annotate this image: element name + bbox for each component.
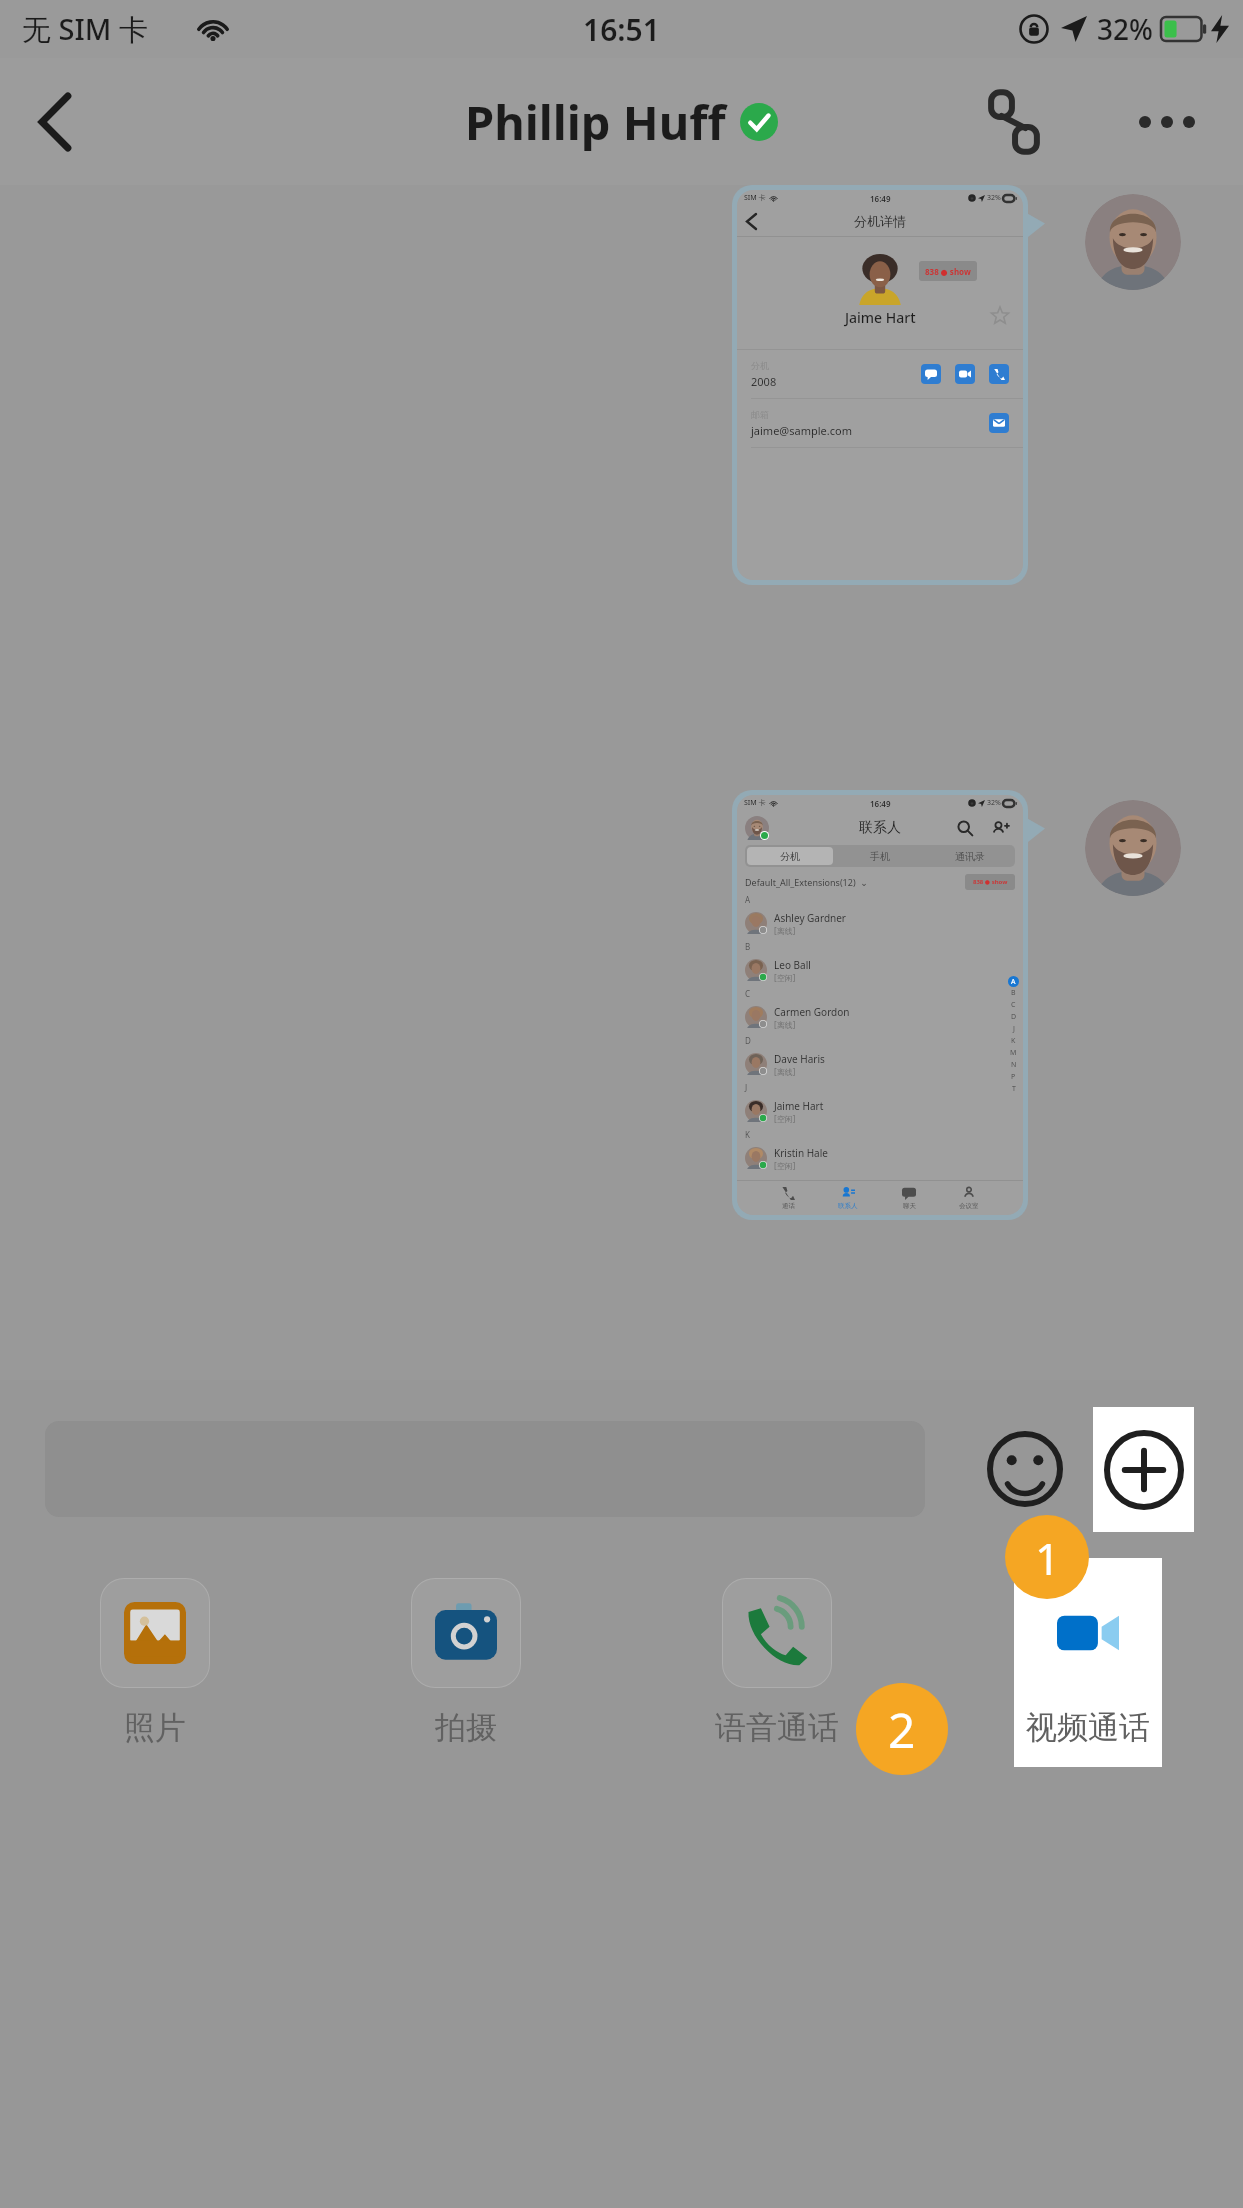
staticText: 分机 <box>751 360 769 371</box>
button[interactable]: 分机 <box>747 847 833 865</box>
button[interactable] <box>989 413 1009 433</box>
button[interactable]: SIM 卡 <box>737 190 1023 580</box>
button[interactable]: Emoji <box>975 1419 1075 1519</box>
staticText: Jaime Hart <box>845 308 916 327</box>
staticText: 视频通话 <box>1026 1708 1150 1747</box>
staticText: Jaime Hart <box>774 1099 824 1113</box>
button[interactable]: 会议室 <box>959 1186 979 1210</box>
staticText: 手机 <box>870 850 890 863</box>
button[interactable]: Call <box>968 76 1060 168</box>
staticText: [空闲] <box>774 1113 796 1124</box>
button[interactable]: 语音通话 <box>703 1578 851 1747</box>
button[interactable]: SIM 卡 <box>737 795 1023 1215</box>
staticText: 838 ● show <box>973 878 1008 886</box>
staticText: Dave Haris <box>774 1052 825 1066</box>
button[interactable]: Add attachment <box>1093 1407 1194 1532</box>
staticText: D <box>1011 1012 1017 1022</box>
staticText: K <box>1011 1036 1016 1046</box>
button[interactable]: Dave Haris <box>745 1049 1023 1079</box>
staticText: A <box>1011 977 1016 987</box>
staticText: 联系人 <box>838 1202 858 1210</box>
button[interactable]: 手机 <box>837 847 923 865</box>
button[interactable]: Ashley Gardner <box>745 908 1023 938</box>
staticText: 照片 <box>124 1708 186 1747</box>
staticText: jaime@sample.com <box>751 423 852 438</box>
staticText: [空闲] <box>774 972 796 983</box>
button[interactable]: Phillip Huff avatar <box>1085 194 1181 290</box>
staticText: 邮箱 <box>751 409 769 420</box>
staticText: A <box>745 894 751 905</box>
staticText: 1 <box>1035 1528 1060 1587</box>
staticText: Carmen Gordon <box>774 1005 850 1019</box>
button[interactable] <box>955 364 975 384</box>
staticText: J <box>1013 1024 1015 1034</box>
staticText: [离线] <box>774 925 796 936</box>
staticText: 16:49 <box>870 798 891 809</box>
staticText: 拍摄 <box>435 1708 497 1747</box>
button[interactable] <box>989 364 1009 384</box>
staticText: 分机详情 <box>854 213 906 229</box>
staticText: [离线] <box>774 1019 796 1030</box>
staticText: 联系人 <box>859 819 901 837</box>
staticText: 2 <box>888 1697 916 1762</box>
staticText: 32% <box>987 798 1001 808</box>
button[interactable]: More options <box>1121 76 1213 168</box>
staticText: [空闲] <box>774 1160 796 1171</box>
button[interactable]: Jaime Hart <box>745 1096 1023 1126</box>
staticText: 16:51 <box>583 9 660 50</box>
staticText: 2008 <box>751 374 777 389</box>
staticText: 分机 <box>780 850 800 863</box>
staticText: Ashley Gardner <box>774 911 846 925</box>
staticText: Leo Ball <box>774 958 811 972</box>
staticText: Phillip Huff <box>465 90 726 154</box>
staticText: C <box>745 988 751 999</box>
staticText: 会议室 <box>959 1202 979 1210</box>
button[interactable]: Phillip Huff avatar <box>1085 800 1181 896</box>
button[interactable]: Back <box>14 79 100 165</box>
staticText: 语音通话 <box>715 1708 839 1747</box>
staticText: Default_All_Extensions(12) ⌄ <box>745 876 868 888</box>
staticText: [离线] <box>774 1066 796 1077</box>
staticText: D <box>745 1035 751 1046</box>
staticText: B <box>745 941 751 952</box>
staticText: J <box>745 1082 748 1093</box>
staticText: 32% <box>987 193 1001 203</box>
staticText: N <box>1011 1060 1017 1070</box>
button[interactable]: Kristin Hale <box>745 1143 1023 1173</box>
staticText: 838 ● show <box>925 266 971 277</box>
staticText: P <box>1011 1072 1016 1082</box>
button[interactable]: 通话 <box>781 1186 795 1210</box>
staticText: SIM 卡 <box>744 193 766 203</box>
button[interactable]: 照片 <box>81 1578 229 1747</box>
button[interactable]: 通讯录 <box>927 847 1013 865</box>
staticText: 16:49 <box>870 193 891 204</box>
staticText: 通话 <box>782 1202 795 1210</box>
button[interactable]: 联系人 <box>838 1186 858 1210</box>
staticText: 聊天 <box>903 1202 916 1210</box>
staticText: 无 SIM 卡 <box>22 9 148 49</box>
staticText: B <box>1011 988 1016 998</box>
staticText: SIM 卡 <box>744 798 766 808</box>
staticText: M <box>1010 1048 1017 1058</box>
button[interactable]: 拍摄 <box>392 1578 540 1747</box>
staticText: 32% <box>1097 10 1153 48</box>
button[interactable]: 聊天 <box>902 1186 916 1210</box>
button[interactable]: Carmen Gordon <box>745 1002 1023 1032</box>
staticText: C <box>1011 1000 1016 1010</box>
staticText: K <box>745 1129 750 1140</box>
button[interactable]: Leo Ball <box>745 955 1023 985</box>
staticText: Kristin Hale <box>774 1146 828 1160</box>
staticText: T <box>1012 1084 1016 1094</box>
staticText: 通讯录 <box>955 850 985 863</box>
button[interactable]: 视频通话 <box>1014 1578 1162 1747</box>
button[interactable] <box>921 364 941 384</box>
